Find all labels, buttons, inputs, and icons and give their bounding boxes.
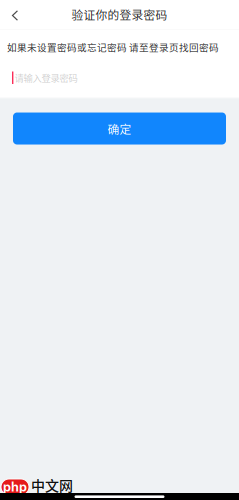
button[interactable]: 返回: [0, 0, 24, 29]
staticText: 请输入登录密码: [14, 71, 77, 84]
staticText: 确定: [107, 120, 131, 137]
button[interactable]: 确定: [13, 112, 226, 144]
staticText: php: [3, 479, 27, 495]
staticText: 如果未设置密码或忘记密码 请至登录页找回密码: [7, 40, 219, 54]
button[interactable]: 请输入登录密码: [0, 64, 239, 97]
staticText: 验证你的登录密码: [71, 6, 167, 23]
staticText: 中文网: [31, 475, 73, 495]
